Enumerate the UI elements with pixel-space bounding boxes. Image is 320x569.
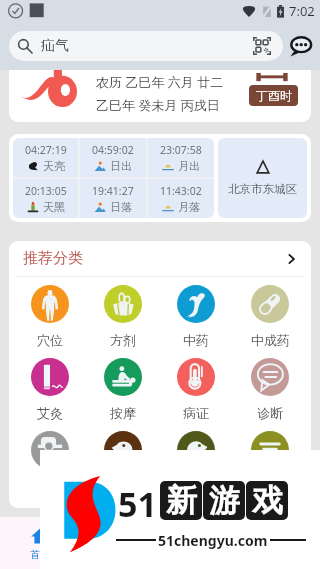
staticText: 月出 — [178, 159, 200, 173]
staticText: 新 — [166, 481, 197, 520]
staticText: 病证 — [183, 405, 209, 421]
button[interactable]: 病证 — [159, 350, 233, 423]
button[interactable]: Category — [86, 423, 159, 496]
button[interactable]: 疝气 — [9, 31, 283, 61]
staticText: 51 — [118, 481, 157, 527]
staticText: 日落 — [110, 200, 132, 214]
button[interactable]: 首页 — [0, 517, 80, 569]
staticText: 游 — [209, 481, 240, 520]
staticText: 穴位 — [37, 332, 63, 348]
staticText: 日出 — [110, 159, 132, 173]
button[interactable]: 艾灸 — [13, 350, 86, 423]
button[interactable]: 04:27:19 — [13, 138, 214, 218]
staticText: 7:02 — [289, 2, 315, 20]
staticText: 方剂 — [110, 332, 136, 348]
button[interactable]: 方剂 — [86, 277, 159, 350]
button[interactable]: 中成药 — [233, 277, 307, 350]
staticText: 艾灸 — [37, 405, 63, 421]
staticText: 戏 — [252, 481, 283, 520]
staticText: 推荐分类 — [23, 249, 83, 268]
staticText: 乙巳年 癸未月 丙戌日 — [96, 96, 220, 114]
staticText: 诊断 — [257, 405, 283, 421]
button[interactable]: Category — [233, 423, 307, 496]
staticText: 04:27:19 — [25, 143, 67, 157]
staticText: 农历 乙巳年 六月 廿二 — [96, 73, 224, 91]
button[interactable]: Category — [13, 423, 86, 496]
staticText: 天亮 — [43, 159, 65, 173]
staticText: 19:41:27 — [92, 184, 134, 198]
button[interactable]: 北京市东城区 — [218, 138, 307, 218]
button[interactable]: 按摩 — [86, 350, 159, 423]
button[interactable]: 本草 — [80, 517, 160, 569]
button[interactable]: Scan QR code — [253, 37, 271, 55]
button[interactable]: 推荐分类 — [9, 241, 311, 276]
staticText: 11:43:02 — [160, 184, 202, 198]
button[interactable]: 我的 — [240, 517, 320, 569]
staticText: 中药 — [183, 332, 209, 348]
staticText: 按摩 — [110, 405, 136, 421]
staticText: 51chengyu.com — [158, 531, 268, 550]
staticText: 04:59:02 — [92, 143, 134, 157]
staticText: 北京市东城区 — [228, 182, 297, 196]
staticText: 月落 — [178, 200, 200, 214]
staticText: 方剂 — [190, 548, 210, 561]
button[interactable]: 穴位 — [13, 277, 86, 350]
staticText: 疝气 — [41, 37, 69, 55]
staticText: 丁酉时 — [256, 88, 292, 103]
button[interactable]: Category — [159, 423, 233, 496]
button[interactable]: 诊断 — [233, 350, 307, 423]
button[interactable]: 农历 乙巳年 六月 廿二 — [9, 70, 311, 122]
staticText: 中成药 — [251, 332, 290, 348]
staticText: 天黑 — [43, 200, 65, 214]
staticText: 23:07:58 — [160, 143, 202, 157]
staticText: 首页 — [30, 548, 50, 561]
button[interactable]: 中药 — [159, 277, 233, 350]
button[interactable]: 方剂 — [160, 517, 240, 569]
staticText: 20:13:05 — [25, 184, 67, 198]
button[interactable]: Messages — [290, 35, 312, 57]
